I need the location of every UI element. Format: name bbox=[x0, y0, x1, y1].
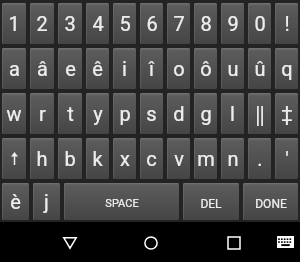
button[interactable]: 3 bbox=[58, 3, 82, 44]
button[interactable]: o bbox=[167, 48, 190, 89]
staticText: d bbox=[173, 102, 185, 125]
staticText: h bbox=[36, 147, 48, 170]
staticText: 0 bbox=[254, 12, 266, 35]
staticText: q bbox=[281, 57, 293, 80]
staticText: c bbox=[146, 147, 157, 170]
button[interactable]: t bbox=[58, 93, 82, 134]
button[interactable]: x bbox=[113, 138, 136, 179]
button[interactable]: p bbox=[113, 93, 136, 134]
button[interactable]: . bbox=[248, 138, 271, 179]
button[interactable]: û bbox=[248, 48, 271, 89]
staticText: s bbox=[146, 102, 157, 125]
button[interactable]: DONE bbox=[243, 183, 298, 220]
button[interactable]: â bbox=[30, 48, 54, 89]
button[interactable]: v bbox=[167, 138, 190, 179]
button[interactable]: r bbox=[30, 93, 54, 134]
staticText: ‖ bbox=[254, 100, 266, 127]
button[interactable]: n bbox=[221, 138, 244, 179]
button[interactable]: 1 bbox=[2, 3, 26, 44]
staticText: v bbox=[174, 147, 184, 170]
button[interactable]: h bbox=[30, 138, 54, 179]
button[interactable]: ' bbox=[275, 138, 298, 179]
button[interactable]: ‖ bbox=[248, 93, 271, 134]
button[interactable]: l bbox=[221, 93, 244, 134]
staticText: 7 bbox=[173, 12, 185, 35]
staticText: o bbox=[173, 57, 185, 80]
staticText: ô bbox=[200, 57, 212, 80]
staticText: e bbox=[65, 57, 76, 80]
staticText: è bbox=[10, 190, 21, 213]
staticText: â bbox=[37, 57, 48, 80]
staticText: 3 bbox=[64, 12, 76, 35]
button[interactable]: SPACE bbox=[64, 183, 179, 220]
staticText: m bbox=[197, 147, 215, 170]
button[interactable]: Back bbox=[55, 228, 84, 257]
button[interactable]: 5 bbox=[113, 3, 136, 44]
button[interactable]: a bbox=[2, 48, 26, 89]
button[interactable]: s bbox=[140, 93, 163, 134]
button[interactable]: y bbox=[86, 93, 109, 134]
staticText: p bbox=[119, 102, 131, 125]
button[interactable]: k bbox=[86, 138, 109, 179]
staticText: a bbox=[9, 57, 20, 80]
button[interactable]: j bbox=[33, 183, 60, 220]
button[interactable]: g bbox=[194, 93, 217, 134]
button[interactable]: 2 bbox=[30, 3, 54, 44]
button[interactable]: 9 bbox=[221, 3, 244, 44]
button[interactable]: ê bbox=[86, 48, 109, 89]
staticText: 5 bbox=[119, 12, 131, 35]
staticText: b bbox=[64, 147, 76, 170]
staticText: û bbox=[254, 57, 266, 80]
staticText: . bbox=[257, 147, 263, 170]
button[interactable]: è bbox=[2, 183, 29, 220]
button[interactable]: 7 bbox=[167, 3, 190, 44]
button[interactable]: î bbox=[140, 48, 163, 89]
button[interactable]: 8 bbox=[194, 3, 217, 44]
button[interactable]: Recents bbox=[219, 228, 248, 257]
button[interactable]: 4 bbox=[86, 3, 109, 44]
staticText: y bbox=[93, 102, 103, 125]
staticText: t bbox=[67, 102, 74, 125]
button[interactable]: i bbox=[113, 48, 136, 89]
staticText: 1 bbox=[8, 12, 20, 35]
button[interactable]: ‡ bbox=[275, 93, 298, 134]
button[interactable]: Switch keyboard bbox=[271, 228, 299, 256]
staticText: ê bbox=[92, 57, 103, 80]
staticText: g bbox=[200, 102, 212, 125]
staticText: r bbox=[39, 102, 46, 125]
button[interactable]: DEL bbox=[183, 183, 239, 220]
button[interactable] bbox=[2, 138, 26, 179]
staticText: ‡ bbox=[281, 102, 293, 125]
staticText: 8 bbox=[200, 12, 212, 35]
button[interactable]: ! bbox=[275, 3, 298, 44]
button[interactable]: q bbox=[275, 48, 298, 89]
staticText: w bbox=[6, 102, 22, 125]
staticText: 9 bbox=[227, 12, 239, 35]
button[interactable]: c bbox=[140, 138, 163, 179]
staticText: î bbox=[149, 57, 154, 80]
button[interactable]: u bbox=[221, 48, 244, 89]
staticText: k bbox=[92, 147, 103, 170]
staticText: ' bbox=[285, 147, 289, 170]
staticText: j bbox=[44, 190, 49, 213]
staticText: DONE bbox=[255, 197, 287, 211]
button[interactable]: ô bbox=[194, 48, 217, 89]
button[interactable]: Home bbox=[136, 228, 165, 257]
staticText: x bbox=[120, 147, 130, 170]
staticText: 4 bbox=[92, 12, 104, 35]
staticText: l bbox=[230, 102, 235, 125]
button[interactable]: e bbox=[58, 48, 82, 89]
staticText: i bbox=[122, 57, 127, 80]
staticText: ! bbox=[284, 12, 290, 35]
button[interactable]: b bbox=[58, 138, 82, 179]
staticText: 6 bbox=[146, 12, 158, 35]
staticText: DEL bbox=[200, 197, 222, 211]
button[interactable]: w bbox=[2, 93, 26, 134]
button[interactable]: m bbox=[194, 138, 217, 179]
button[interactable]: d bbox=[167, 93, 190, 134]
button[interactable]: 0 bbox=[248, 3, 271, 44]
staticText: n bbox=[227, 147, 239, 170]
staticText: u bbox=[227, 57, 239, 80]
staticText: 2 bbox=[36, 12, 48, 35]
button[interactable]: 6 bbox=[140, 3, 163, 44]
